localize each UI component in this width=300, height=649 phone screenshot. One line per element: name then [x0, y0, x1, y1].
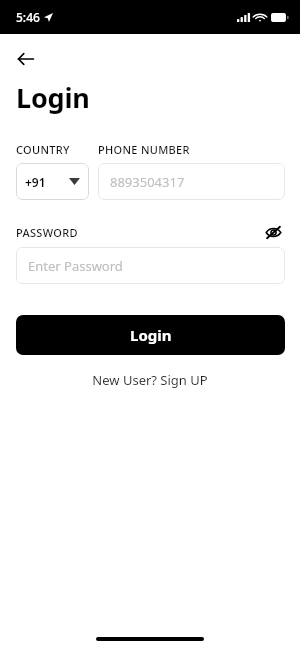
button[interactable]: Show password — [261, 220, 285, 244]
staticText: 5:46 — [16, 9, 40, 25]
button[interactable]: +91 — [16, 163, 89, 200]
staticText: COUNTRY — [16, 142, 98, 157]
button[interactable]: New User? Sign UP — [84, 367, 216, 393]
staticText: Enter Password — [28, 257, 123, 275]
button[interactable]: 8893504317 — [98, 163, 285, 200]
staticText: PHONE NUMBER — [98, 142, 190, 157]
staticText: New User? Sign UP — [92, 371, 208, 389]
staticText: Login — [130, 325, 172, 345]
staticText: +91 — [25, 174, 46, 190]
staticText: PASSWORD — [16, 225, 78, 240]
button[interactable]: Back — [12, 45, 40, 73]
staticText: 8893504317 — [110, 173, 185, 191]
staticText: Login — [16, 79, 90, 116]
button[interactable]: Login — [16, 315, 285, 355]
button[interactable]: Enter Password — [16, 247, 285, 284]
